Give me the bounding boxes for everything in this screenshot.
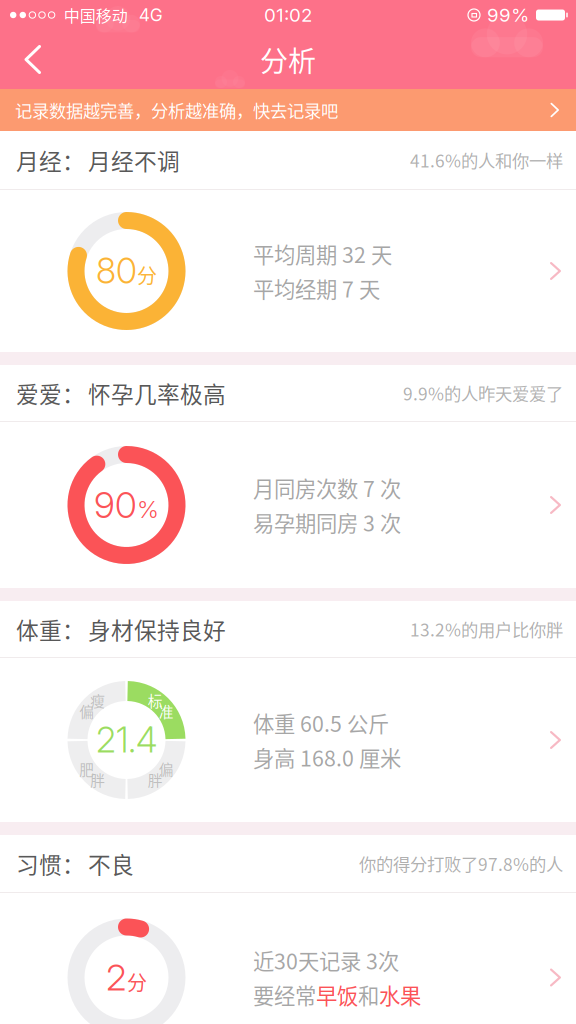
staticText: 和 <box>358 979 379 1010</box>
staticText: 13.2%的用户比你胖 <box>410 616 563 642</box>
staticText: 体重 60.5 公斤 <box>253 707 389 738</box>
staticText: 偏 <box>79 701 94 722</box>
staticText: 水果 <box>379 979 421 1010</box>
staticText: 爱爱： <box>16 377 85 409</box>
staticText: 90 <box>94 483 137 527</box>
staticText: 80 <box>96 250 137 292</box>
staticText: 瘦 <box>90 690 105 711</box>
button[interactable]: Back <box>0 33 61 85</box>
staticText: 2 <box>106 956 127 999</box>
staticText: 胖 <box>148 769 163 790</box>
staticText: 习惯： <box>16 847 85 880</box>
staticText: 标 <box>148 690 163 711</box>
staticText: 身高 168.0 厘米 <box>253 742 401 773</box>
staticText: 9.9%的人昨天爱爱了 <box>403 380 563 406</box>
button[interactable]: 记录数据越完善，分析越准确，快去记录吧 <box>0 89 576 131</box>
staticText: 分 <box>127 967 147 996</box>
staticText: 易孕期同房 3 次 <box>253 507 401 538</box>
staticText: 平均经期 7 天 <box>253 273 380 304</box>
button[interactable]: 90 <box>0 422 576 588</box>
staticText: 怀孕几率极高 <box>88 377 226 409</box>
staticText: 近30天记录 3次 <box>253 945 399 976</box>
staticText: 你的得分打败了97.8%的人 <box>359 851 563 876</box>
staticText: 要经常 <box>253 979 316 1010</box>
button[interactable]: 标 <box>0 658 576 822</box>
button[interactable]: 80 <box>0 190 576 352</box>
staticText: 分 <box>137 260 157 289</box>
staticText: 分析 <box>260 39 316 80</box>
staticText: 中国移动 <box>64 3 128 27</box>
staticText: 41.6%的人和你一样 <box>410 147 563 173</box>
button[interactable]: 2 <box>0 893 576 1024</box>
staticText: 身材保持良好 <box>88 613 226 645</box>
staticText: 月经不调 <box>88 144 180 176</box>
staticText: 月经： <box>16 144 85 176</box>
staticText: 99% <box>487 4 529 26</box>
staticText: 4G <box>139 4 163 25</box>
staticText: 平均周期 32 天 <box>253 238 392 269</box>
staticText: 偏 <box>159 758 174 779</box>
staticText: 早饭 <box>316 979 358 1010</box>
staticText: 准 <box>159 701 174 722</box>
staticText: 21.4 <box>96 719 157 761</box>
staticText: 不良 <box>88 847 134 880</box>
staticText: 月同房次数 7 次 <box>253 472 401 503</box>
staticText: 胖 <box>90 769 105 790</box>
staticText: % <box>137 495 159 524</box>
staticText: 记录数据越完善，分析越准确，快去记录吧 <box>15 97 338 123</box>
staticText: 肥 <box>79 758 94 779</box>
staticText: 体重： <box>16 613 85 645</box>
staticText: 01:02 <box>264 4 312 26</box>
